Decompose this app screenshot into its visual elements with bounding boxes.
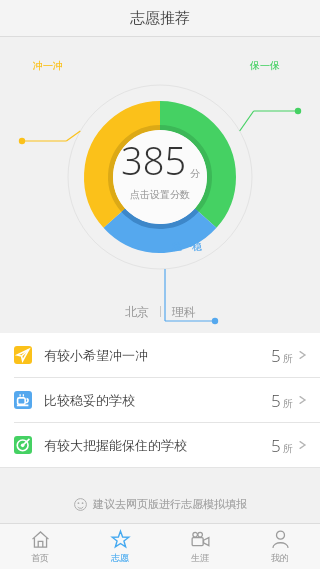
button[interactable]: 385 [110,134,210,201]
staticText: 5 [271,389,281,412]
staticText: 生涯 [191,552,209,563]
staticText: 5 [271,434,281,457]
button[interactable]: 建议去网页版进行志愿模拟填报 [0,485,320,523]
staticText: 所 [283,352,293,365]
button[interactable]: 理科 [172,304,196,319]
staticText: 385 [121,134,187,186]
staticText: 点击设置分数 [130,188,190,201]
staticText: 志愿 [111,552,129,563]
staticText: 理科 [172,304,196,319]
staticText: 首页 [31,552,49,563]
button[interactable]: 生涯 [160,524,240,569]
staticText: 志愿推荐 [130,9,190,28]
button[interactable]: 志愿 [80,524,160,569]
button[interactable]: 首页 [0,524,80,569]
staticText: 所 [283,397,293,410]
staticText: 有较大把握能保住的学校 [44,437,187,453]
button[interactable]: 北京 [125,304,149,319]
staticText: 5 [271,344,281,367]
staticText: 建议去网页版进行志愿模拟填报 [93,497,247,511]
staticText: 有较小希望冲一冲 [44,347,148,363]
staticText: 稳一稳 [172,240,202,253]
staticText: 冲一冲 [33,59,63,72]
button[interactable]: 有较大把握能保住的学校 [0,423,320,467]
staticText: 比较稳妥的学校 [44,392,135,408]
button[interactable]: 有较小希望冲一冲 [0,333,320,377]
staticText: 我的 [271,552,289,563]
staticText: 保一保 [250,59,280,72]
staticText: 北京 [125,304,149,319]
button[interactable]: 我的 [240,524,320,569]
staticText: 分 [190,167,200,180]
staticText: 所 [283,442,293,455]
button[interactable]: 比较稳妥的学校 [0,378,320,422]
